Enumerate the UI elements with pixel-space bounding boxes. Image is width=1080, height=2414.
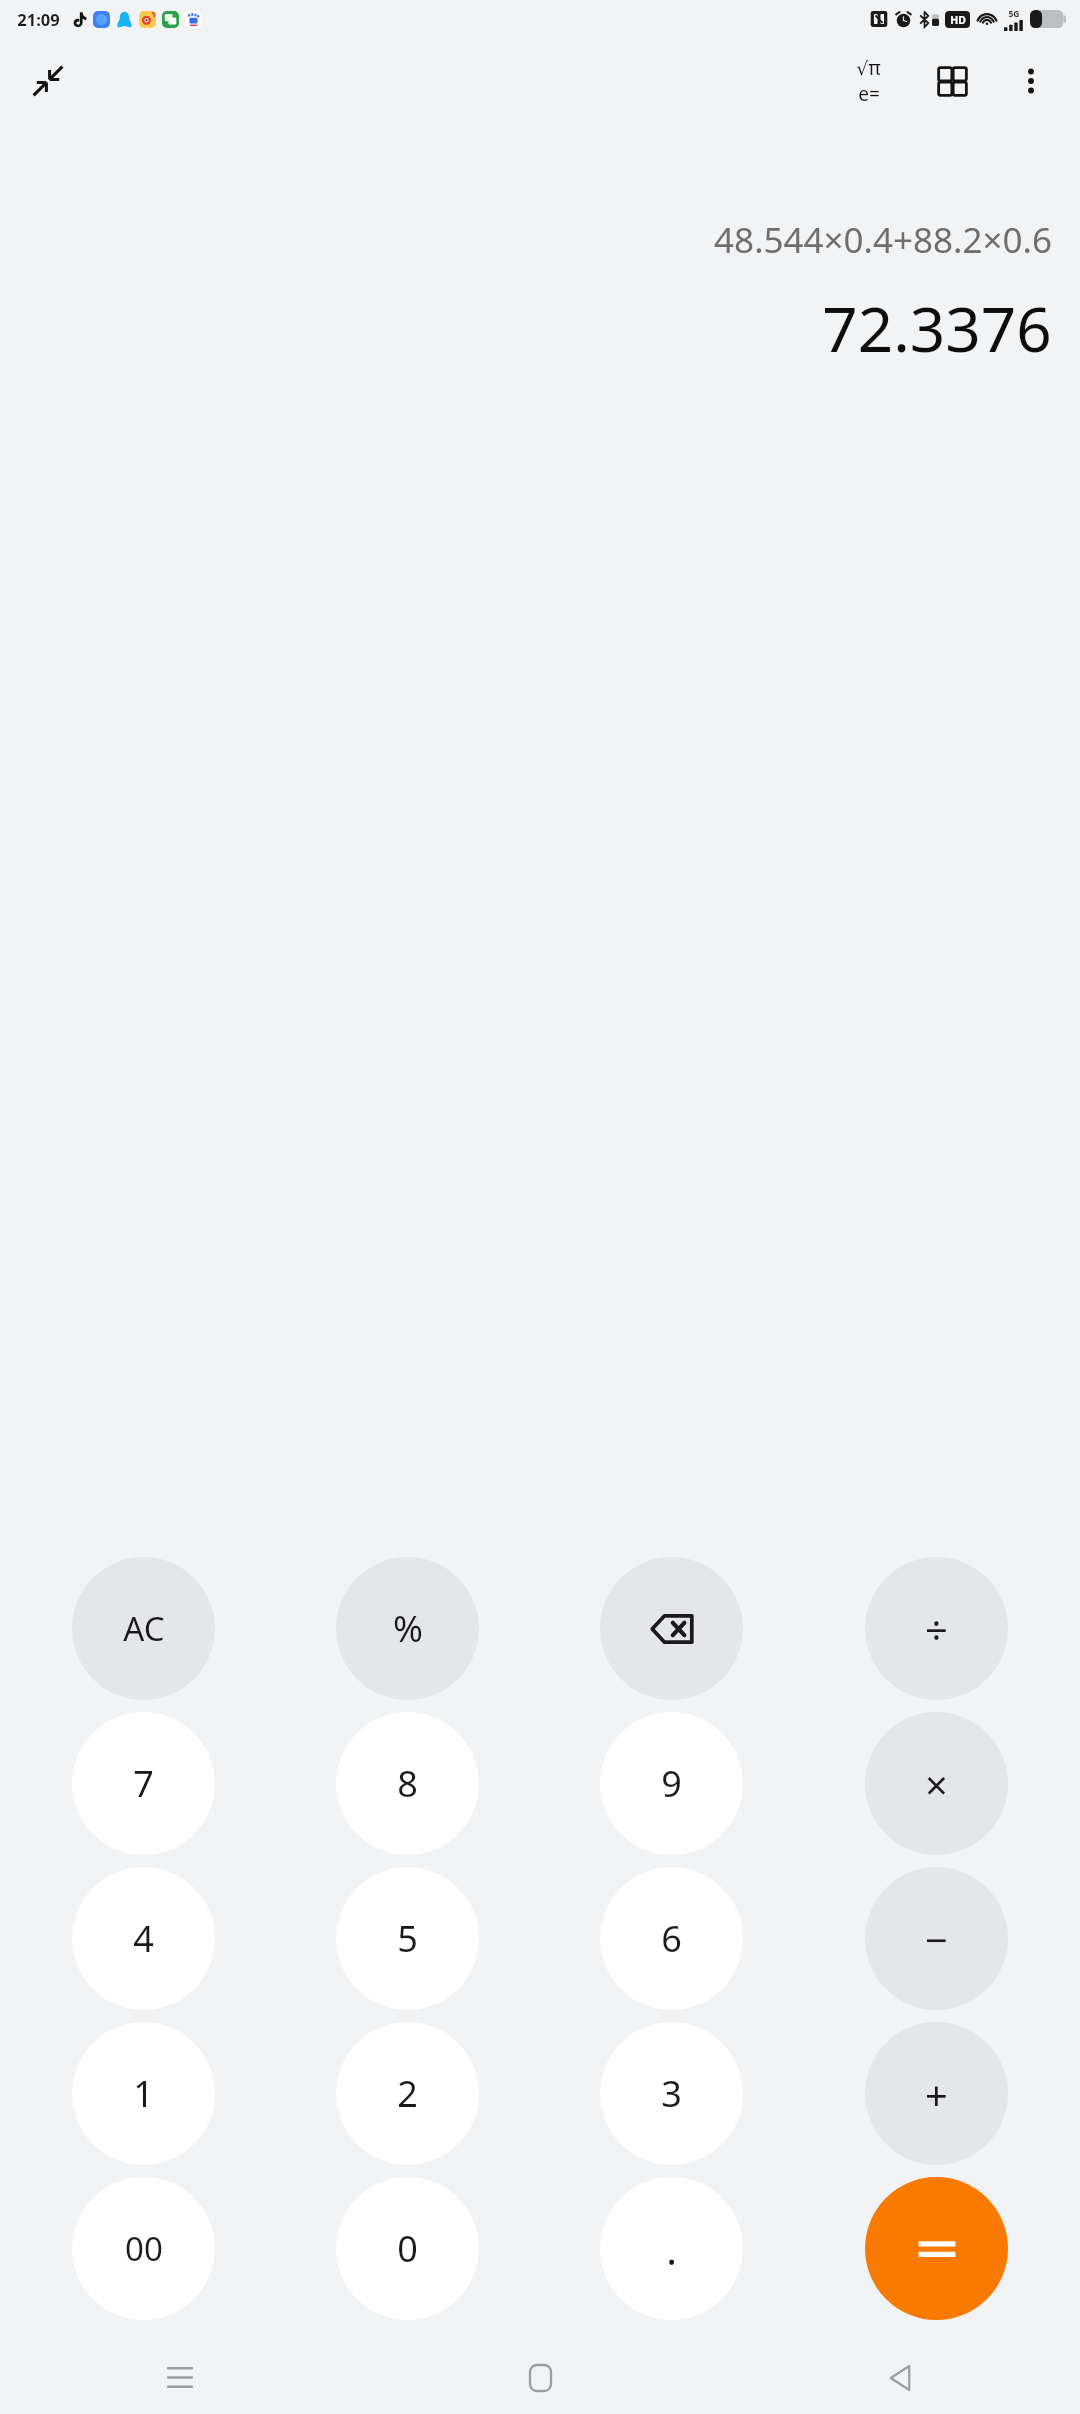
staticText: 5G xyxy=(1008,8,1020,20)
button[interactable]: % xyxy=(336,1557,479,1700)
button[interactable]: . xyxy=(600,2177,743,2320)
button[interactable]: Recent apps xyxy=(0,2342,360,2414)
button[interactable]: 0 xyxy=(336,2177,479,2320)
button[interactable]: 7 xyxy=(72,1712,215,1855)
staticText: 2 xyxy=(397,2069,418,2118)
staticText: 21:09 xyxy=(17,8,60,30)
staticText: 5 xyxy=(397,1914,418,1963)
staticText: √π xyxy=(856,55,881,81)
button[interactable]: More options xyxy=(1000,50,1062,112)
staticText: AC xyxy=(123,1606,165,1651)
staticText: 4 xyxy=(133,1914,154,1963)
staticText: 0 xyxy=(397,2224,418,2273)
staticText: 48.544×0.4+88.2×0.6 xyxy=(714,216,1052,264)
staticText: 1 xyxy=(133,2069,154,2118)
button[interactable]: AC xyxy=(72,1557,215,1700)
staticText: 00 xyxy=(125,2226,163,2271)
staticText: 3 xyxy=(661,2069,682,2118)
button[interactable]: Equals xyxy=(865,2177,1008,2320)
staticText: × xyxy=(925,1757,948,1811)
button[interactable]: 1 xyxy=(72,2022,215,2165)
button[interactable]: ÷ xyxy=(865,1557,1008,1700)
button[interactable]: 8 xyxy=(336,1712,479,1855)
button[interactable]: + xyxy=(865,2022,1008,2165)
staticText: 72.3376 xyxy=(822,286,1052,370)
button[interactable]: 5 xyxy=(336,1867,479,2010)
button[interactable]: 00 xyxy=(72,2177,215,2320)
button[interactable]: 6 xyxy=(600,1867,743,2010)
staticText: 8 xyxy=(397,1759,418,1808)
button[interactable]: Back xyxy=(720,2342,1080,2414)
button[interactable]: − xyxy=(865,1867,1008,2010)
button[interactable]: 4 xyxy=(72,1867,215,2010)
button[interactable]: 3 xyxy=(600,2022,743,2165)
staticText: . xyxy=(666,2222,677,2276)
button[interactable]: Backspace xyxy=(600,1557,743,1700)
staticText: e= xyxy=(858,81,880,107)
staticText: − xyxy=(925,1912,948,1966)
staticText: ÷ xyxy=(925,1602,948,1656)
staticText: + xyxy=(925,2067,948,2121)
staticText: 6 xyxy=(661,1914,682,1963)
button[interactable]: Collapse xyxy=(18,51,78,111)
button[interactable]: Unit converter xyxy=(916,45,988,117)
staticText: 9 xyxy=(661,1759,682,1808)
staticText: HD xyxy=(950,13,966,27)
button[interactable]: Scientific mode xyxy=(832,45,904,117)
staticText: % xyxy=(393,1604,423,1653)
button[interactable]: Home xyxy=(360,2342,720,2414)
button[interactable]: 2 xyxy=(336,2022,479,2165)
staticText: 7 xyxy=(133,1759,154,1808)
button[interactable]: 9 xyxy=(600,1712,743,1855)
button[interactable]: × xyxy=(865,1712,1008,1855)
